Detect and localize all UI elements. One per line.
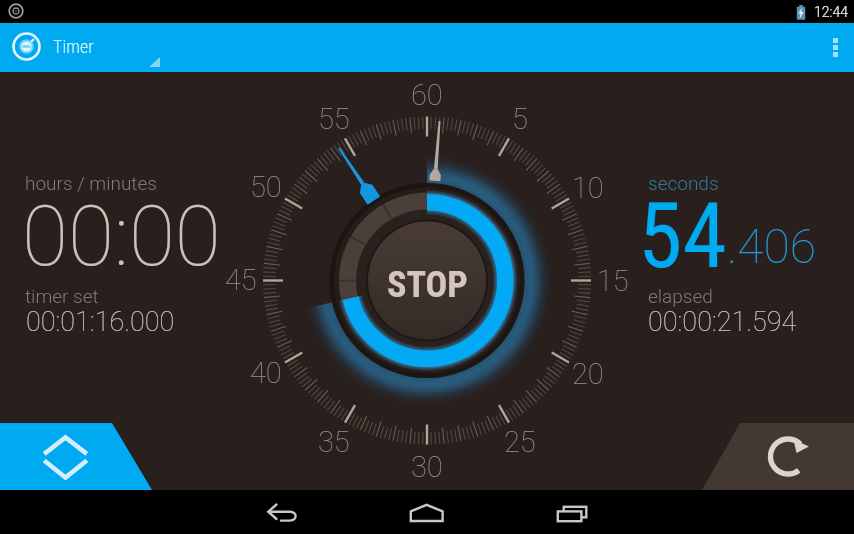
button[interactable]: Recent apps bbox=[527, 490, 617, 534]
staticText: Timer bbox=[53, 36, 94, 57]
staticText: 20 bbox=[572, 357, 604, 391]
staticText: 00:00:21.594 bbox=[648, 306, 797, 338]
staticText: seconds bbox=[648, 172, 719, 194]
staticText: 60 bbox=[411, 78, 443, 112]
staticText: 12:44 bbox=[814, 4, 849, 20]
staticText: STOP bbox=[387, 264, 468, 306]
button[interactable]: Back bbox=[238, 490, 328, 534]
staticText: hours / minutes bbox=[25, 172, 157, 194]
staticText: 55 bbox=[318, 102, 350, 136]
staticText: 35 bbox=[318, 425, 350, 459]
staticText: 30 bbox=[411, 450, 443, 484]
staticText: 50 bbox=[250, 170, 282, 204]
staticText: timer set bbox=[25, 285, 99, 307]
staticText: 45 bbox=[225, 263, 257, 297]
button[interactable]: Adjust timer value bbox=[0, 423, 112, 490]
staticText: elapsed bbox=[648, 285, 713, 307]
button[interactable]: Reset timer bbox=[742, 423, 854, 490]
button[interactable]: More options bbox=[816, 23, 854, 72]
staticText: 00:00 bbox=[22, 187, 221, 285]
staticText: 5 bbox=[512, 102, 528, 136]
staticText: 25 bbox=[504, 425, 536, 459]
staticText: 10 bbox=[572, 171, 604, 205]
staticText: .406 bbox=[727, 218, 817, 274]
staticText: 15 bbox=[597, 264, 629, 298]
staticText: 54 bbox=[638, 184, 727, 289]
staticText: 00:01:16.000 bbox=[26, 306, 175, 338]
button[interactable]: Home bbox=[382, 490, 472, 534]
staticText: 40 bbox=[250, 356, 282, 390]
